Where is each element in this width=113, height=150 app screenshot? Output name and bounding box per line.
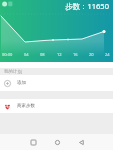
- staticText: 商家步数: [17, 103, 35, 109]
- button[interactable]: 添加: [0, 75, 113, 91]
- button[interactable]: Back: [69, 134, 93, 150]
- staticText: 24: [105, 52, 110, 57]
- staticText: 步数：11650: [65, 1, 109, 11]
- staticText: 12: [57, 52, 62, 57]
- staticText: 08: [40, 52, 45, 57]
- button[interactable]: 商家步数: [0, 99, 113, 113]
- staticText: 添加: [17, 80, 26, 86]
- staticText: 16: [73, 52, 78, 57]
- button[interactable]: Home: [45, 134, 69, 150]
- button[interactable]: Recents: [21, 134, 45, 150]
- staticText: 04: [24, 52, 29, 57]
- staticText: 20: [89, 52, 94, 57]
- staticText: 我的计划: [4, 69, 22, 75]
- staticText: 00:00: [2, 52, 13, 57]
